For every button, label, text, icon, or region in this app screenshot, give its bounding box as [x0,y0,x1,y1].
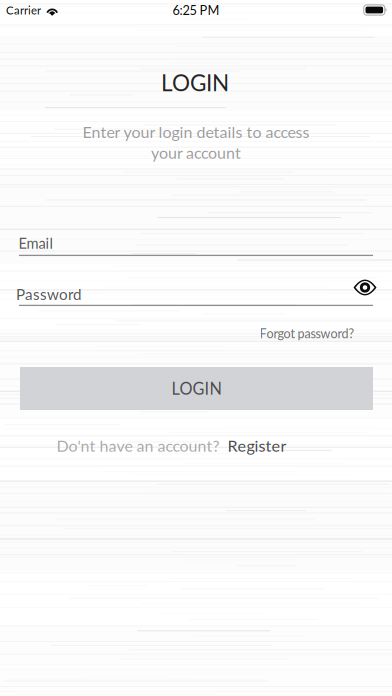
staticText: Do'nt have an account? [56,436,219,455]
button[interactable]: Show password [345,270,385,304]
staticText: Forgot password? [259,326,354,341]
staticText: 6:25 PM [172,2,219,18]
staticText: your account [151,143,241,162]
button[interactable]: Register [227,436,286,455]
staticText: LOGIN [171,379,221,398]
staticText: Carrier [6,3,41,17]
staticText: Enter your login details to access [82,122,309,141]
button[interactable]: LOGIN [20,367,373,410]
staticText: Register [227,436,286,455]
button[interactable]: Forgot password? [259,326,354,341]
staticText: LOGIN [161,69,229,96]
staticText: Email [18,234,52,252]
staticText: Password [16,285,82,303]
